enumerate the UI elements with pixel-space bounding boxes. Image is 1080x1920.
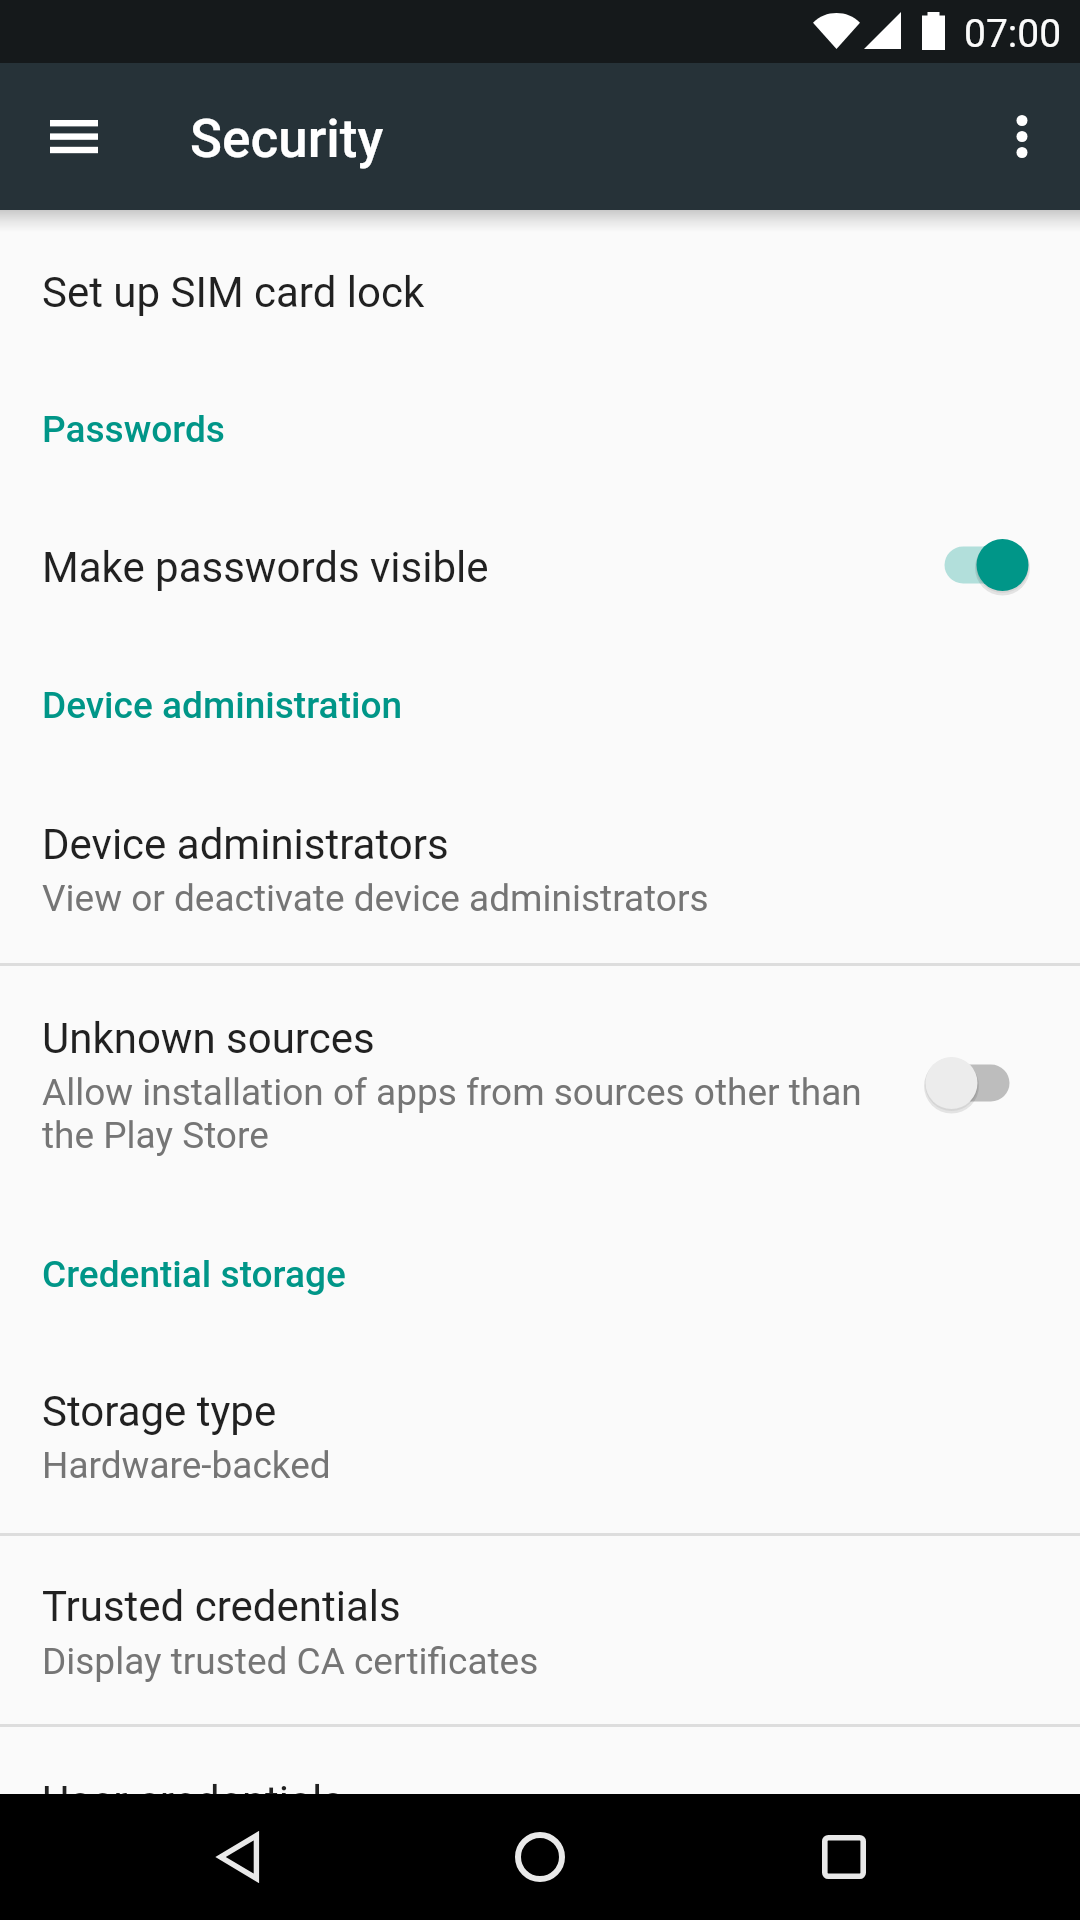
- staticText: Security: [190, 108, 384, 170]
- staticText: Set up SIM card lock: [42, 268, 425, 317]
- staticText: 07:00: [964, 11, 1062, 57]
- staticText: View and modify stored credentials: [42, 1830, 620, 1873]
- staticText: User credentials: [42, 1777, 344, 1826]
- button[interactable]: Device administrators: [0, 775, 1080, 964]
- staticText: Allow installation of apps from sources …: [42, 1071, 902, 1157]
- button[interactable]: Trusted credentials: [0, 1536, 1080, 1724]
- button[interactable]: On: [929, 529, 1025, 601]
- staticText: Make passwords visible: [42, 543, 489, 592]
- button[interactable]: Make passwords visible: [0, 500, 1080, 640]
- staticText: Passwords: [42, 408, 225, 451]
- staticText: Device administrators: [42, 820, 449, 869]
- staticText: Unknown sources: [42, 1014, 375, 1063]
- staticText: Credential storage: [42, 1253, 346, 1296]
- staticText: Device administration: [42, 684, 403, 727]
- staticText: Trusted credentials: [42, 1582, 401, 1631]
- button[interactable]: Recent apps: [781, 1794, 907, 1920]
- button[interactable]: User credentials: [0, 1727, 1080, 1915]
- button[interactable]: Back: [174, 1794, 300, 1920]
- staticText: Display trusted CA certificates: [42, 1640, 539, 1683]
- button[interactable]: More options: [976, 90, 1068, 182]
- button[interactable]: Off: [929, 1047, 1025, 1119]
- button[interactable]: Set up SIM card lock: [0, 210, 1080, 370]
- staticText: Hardware-backed: [42, 1444, 331, 1487]
- staticText: Storage type: [42, 1387, 277, 1436]
- button[interactable]: Unknown sources: [0, 966, 1080, 1196]
- button[interactable]: Navigation drawer: [26, 90, 121, 182]
- button[interactable]: Storage type: [0, 1345, 1080, 1533]
- button[interactable]: Home: [477, 1794, 603, 1920]
- staticText: View or deactivate device administrators: [42, 877, 709, 920]
